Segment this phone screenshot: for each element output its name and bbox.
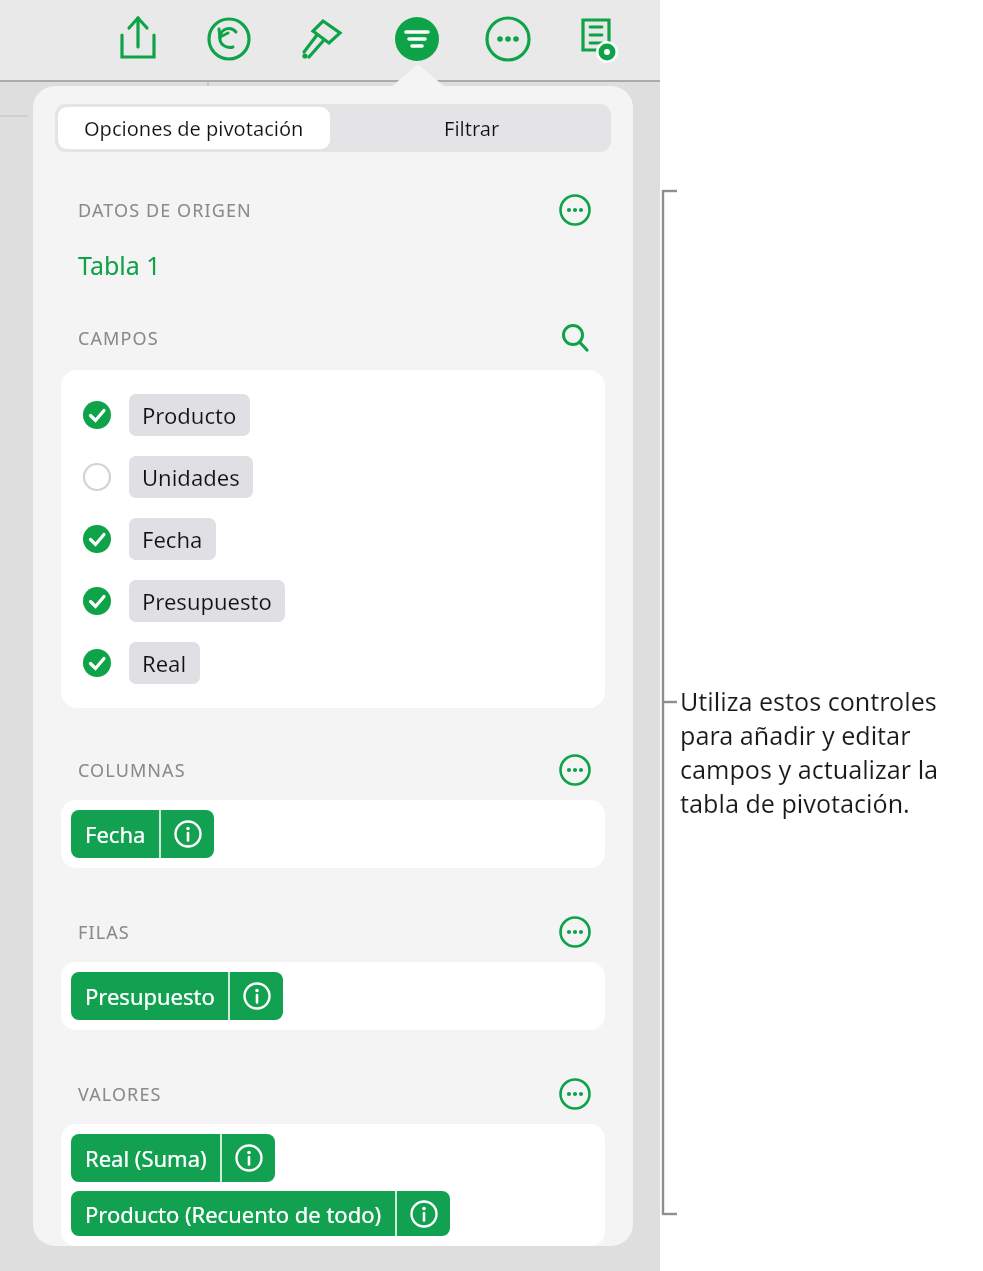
button[interactable]: Real (Suma) bbox=[71, 1134, 275, 1182]
button[interactable]: View bbox=[567, 9, 627, 69]
button[interactable]: More bbox=[478, 9, 538, 69]
staticText: Producto (Recuento de todo) bbox=[85, 1199, 382, 1229]
button[interactable]: Producto (Recuento de todo) bbox=[71, 1191, 450, 1236]
other: Info Producto (Recuento de todo) bbox=[398, 1191, 450, 1236]
button[interactable]: Presupuesto bbox=[71, 972, 283, 1020]
staticText: Opciones de pivotación bbox=[84, 115, 304, 142]
staticText: Presupuesto bbox=[142, 586, 272, 616]
other: Info Real (Suma) bbox=[223, 1134, 275, 1182]
button[interactable]: Fecha bbox=[71, 810, 214, 858]
button[interactable]: More column options bbox=[555, 750, 595, 790]
button[interactable]: Real bbox=[61, 632, 605, 694]
staticText: Filtrar bbox=[444, 115, 500, 142]
other: Info Fecha bbox=[162, 810, 214, 858]
button[interactable]: More source data options bbox=[555, 190, 595, 230]
staticText: DATOS DE ORIGEN bbox=[78, 198, 252, 223]
button[interactable]: Tabla 1 bbox=[78, 248, 161, 282]
button[interactable]: Fecha bbox=[61, 508, 605, 570]
staticText: Producto bbox=[142, 400, 237, 430]
button[interactable]: More row options bbox=[555, 912, 595, 952]
button[interactable]: Presupuesto bbox=[61, 570, 605, 632]
staticText: Real (Suma) bbox=[85, 1143, 207, 1173]
staticText: COLUMNAS bbox=[78, 758, 186, 783]
button[interactable]: Organise bbox=[387, 9, 447, 69]
staticText: Fecha bbox=[85, 819, 146, 849]
staticText: Real bbox=[142, 648, 187, 678]
button[interactable]: Producto bbox=[61, 384, 605, 446]
staticText: CAMPOS bbox=[78, 326, 159, 351]
staticText: Presupuesto bbox=[85, 981, 215, 1011]
staticText: VALORES bbox=[78, 1082, 162, 1107]
button[interactable]: Format bbox=[291, 9, 351, 69]
button[interactable]: Share bbox=[108, 9, 168, 69]
button[interactable]: More value options bbox=[555, 1074, 595, 1114]
staticText: Unidades bbox=[142, 462, 240, 492]
button[interactable]: Filtrar bbox=[333, 104, 611, 152]
other: Info Presupuesto bbox=[231, 972, 283, 1020]
button[interactable]: Search fields bbox=[555, 318, 595, 358]
button[interactable]: Opciones de pivotación bbox=[58, 107, 330, 149]
button[interactable]: Undo bbox=[199, 9, 259, 69]
staticText: FILAS bbox=[78, 920, 130, 945]
button[interactable]: Unidades bbox=[61, 446, 605, 508]
staticText: Utiliza estos controles para añadir y ed… bbox=[680, 684, 980, 820]
staticText: Fecha bbox=[142, 524, 203, 554]
